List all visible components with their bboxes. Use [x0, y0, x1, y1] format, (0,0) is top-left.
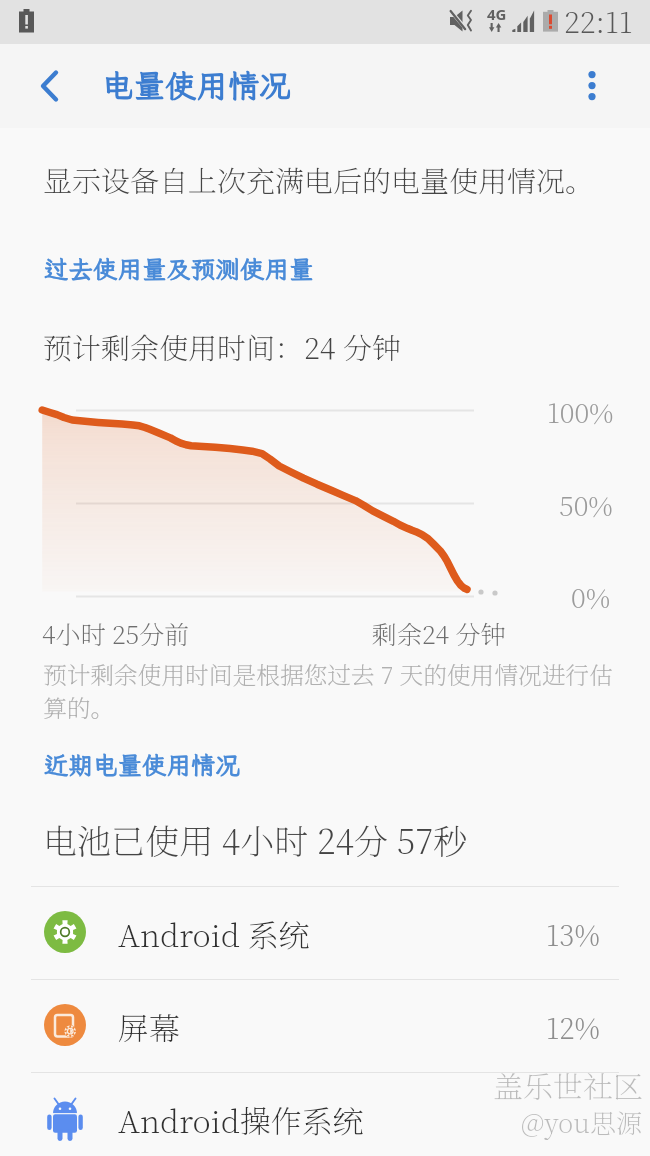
staticText: Android 系统	[118, 911, 310, 956]
staticText: 剩余24 分钟	[372, 615, 506, 651]
staticText: Android操作系统	[118, 1097, 364, 1142]
staticText: 盖乐世社区	[493, 1063, 643, 1106]
staticText: 0%	[571, 577, 611, 616]
staticText: @you思源	[521, 1103, 642, 1140]
button[interactable]: 电量使用情况	[102, 60, 292, 108]
button[interactable]: Android 系统	[0, 887, 650, 980]
button[interactable]: More options	[568, 62, 616, 110]
staticText: 电量使用情况	[102, 64, 292, 105]
staticText: 预计剩余使用时间：24 分钟	[43, 326, 401, 368]
staticText: 13%	[546, 914, 600, 954]
button[interactable]: Back	[24, 62, 76, 110]
staticText: 100%	[547, 392, 614, 431]
staticText: 12%	[546, 1007, 600, 1047]
staticText: 近期电量使用情况	[44, 749, 240, 781]
staticText: 预计剩余使用时间是根据您过去 7 天的使用情况进行估 算的。	[43, 657, 613, 724]
staticText: 4G	[487, 4, 507, 24]
staticText: 22:11	[564, 0, 633, 42]
staticText: 电池已使用 4小时 24分 57秒	[43, 815, 468, 864]
staticText: 50%	[559, 485, 613, 524]
staticText: 过去使用量及预测使用量	[44, 253, 314, 285]
button[interactable]: 屏幕	[0, 980, 650, 1073]
staticText: 屏幕	[118, 1004, 180, 1049]
staticText: 4小时 25分前	[42, 615, 190, 651]
button[interactable]: Android操作系统	[0, 1073, 650, 1156]
staticText: 显示设备自上次充满电后的电量使用情况。	[43, 159, 595, 201]
